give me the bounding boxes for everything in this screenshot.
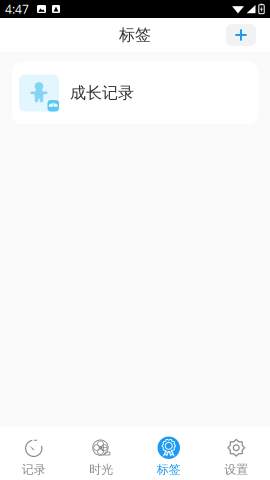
button[interactable]: 成长记录 xyxy=(12,62,258,124)
staticText: 时光 xyxy=(89,462,113,477)
staticText: 成长记录 xyxy=(70,83,134,103)
button[interactable]: 标签 xyxy=(135,426,202,480)
staticText: 标签 xyxy=(157,462,181,477)
button[interactable]: Add tag xyxy=(226,24,256,46)
button[interactable]: 记录 xyxy=(0,426,67,480)
staticText: 4:47 xyxy=(5,1,29,17)
button[interactable]: 时光 xyxy=(67,426,135,480)
staticText: 记录 xyxy=(22,462,46,477)
staticText: 设置 xyxy=(224,462,248,477)
button[interactable]: 设置 xyxy=(202,426,270,480)
staticText: 标签 xyxy=(119,25,151,45)
